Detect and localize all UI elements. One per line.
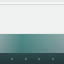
button[interactable]: Search bbox=[23, 53, 28, 64]
button[interactable] bbox=[0, 34, 64, 53]
button[interactable]: Profile bbox=[50, 53, 55, 64]
button[interactable]: Home bbox=[9, 53, 14, 64]
button[interactable]: Library bbox=[36, 53, 41, 64]
